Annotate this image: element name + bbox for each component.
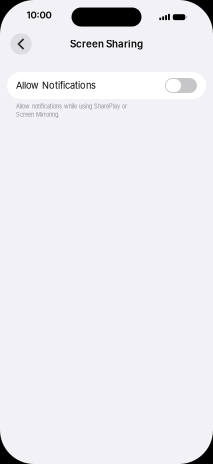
staticText: Screen Sharing — [70, 38, 143, 50]
staticText: Allow Notifications — [16, 80, 96, 91]
staticText: Allow notifications while using SharePla… — [16, 103, 127, 110]
button[interactable]: Allow Notifications — [7, 72, 206, 99]
staticText: 10:00 — [26, 9, 51, 21]
button[interactable]: Back — [6, 29, 36, 59]
staticText: Screen Mirroring. — [16, 111, 60, 118]
